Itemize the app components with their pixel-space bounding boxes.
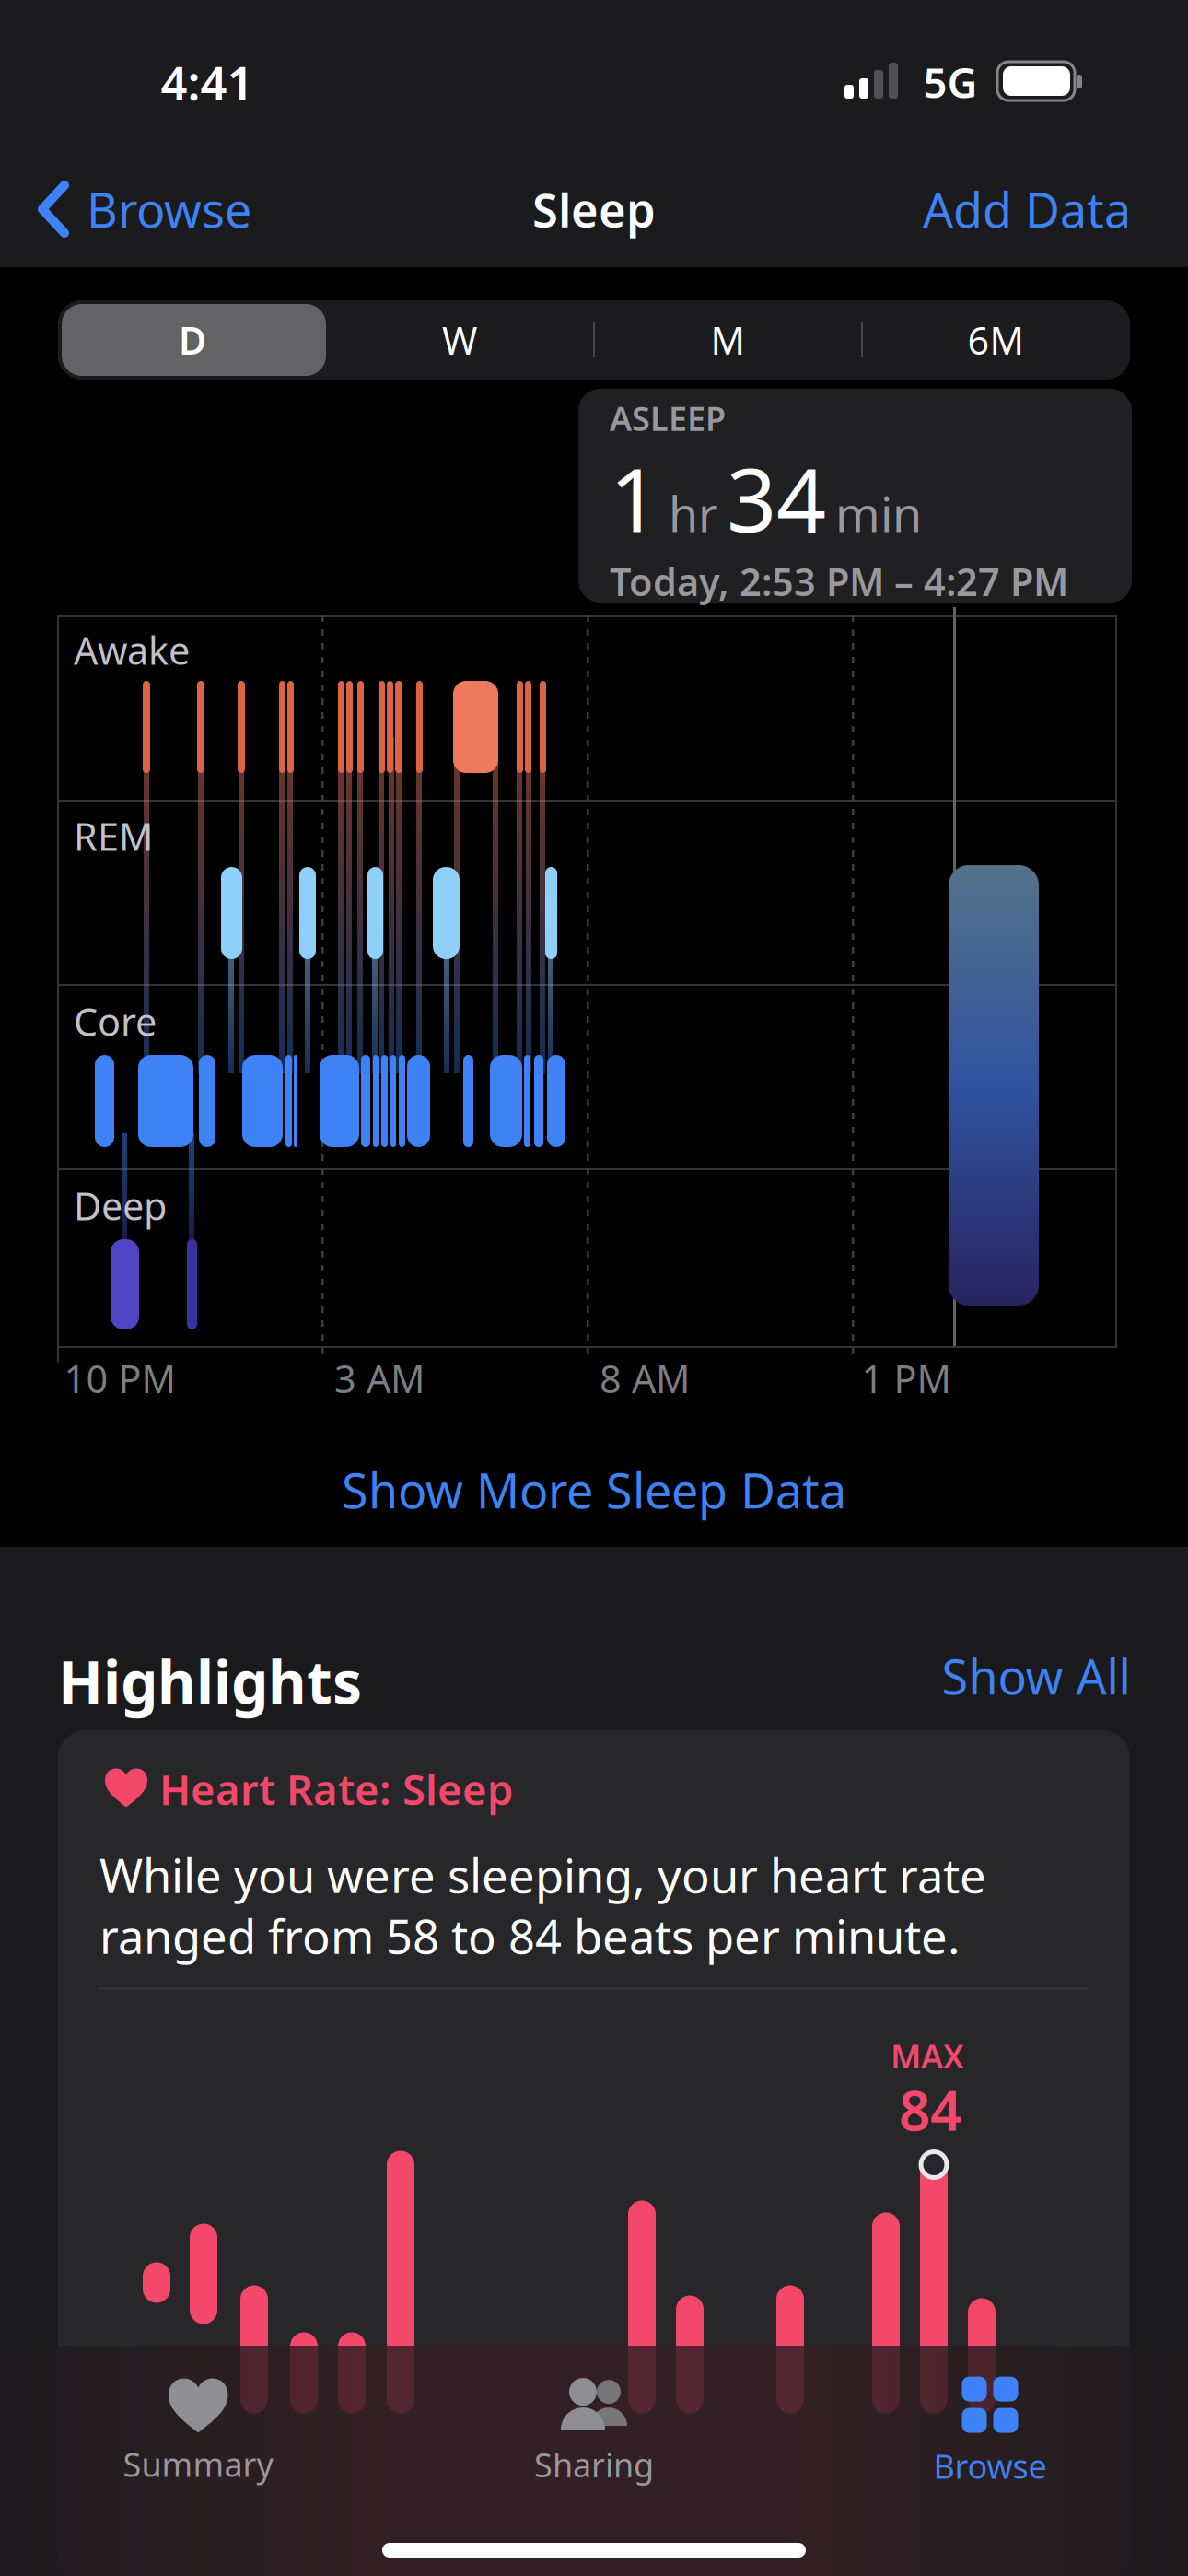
button[interactable]: Browse: [37, 177, 251, 241]
staticText: Summary: [123, 2442, 273, 2486]
staticText: While you were sleeping, your heart rate: [99, 1844, 986, 1906]
staticText: 10 PM: [64, 1353, 175, 1404]
staticText: 6M: [967, 315, 1024, 365]
button[interactable]: Sharing: [396, 2363, 792, 2501]
button[interactable]: Summary: [0, 2363, 396, 2501]
staticText: Core: [74, 996, 157, 1047]
button[interactable]: Add Data: [923, 177, 1131, 241]
staticText: MAX: [891, 2034, 964, 2078]
staticText: Browse: [87, 177, 251, 241]
staticText: Show More Sleep Data: [342, 1458, 846, 1522]
staticText: 5G: [923, 54, 978, 110]
button[interactable]: W: [326, 300, 593, 380]
staticText: 84: [899, 2073, 961, 2146]
button[interactable]: Show All: [942, 1644, 1130, 1708]
staticText: min: [835, 482, 922, 545]
staticText: M: [710, 315, 745, 365]
staticText: Highlights: [58, 1642, 362, 1720]
staticText: Sleep: [532, 178, 656, 240]
button[interactable]: Browse: [792, 2363, 1188, 2501]
staticText: Browse: [933, 2444, 1047, 2488]
staticText: D: [179, 315, 206, 365]
staticText: hr: [669, 482, 717, 545]
staticText: REM: [74, 811, 153, 861]
staticText: ranged from 58 to 84 beats per minute.: [99, 1905, 961, 1967]
staticText: 34: [727, 440, 826, 556]
staticText: 8 AM: [600, 1353, 690, 1404]
staticText: Awake: [74, 625, 190, 675]
staticText: 3 AM: [334, 1353, 425, 1404]
button[interactable]: 6M: [862, 300, 1129, 380]
staticText: Sharing: [534, 2443, 654, 2487]
staticText: Today, 2:53 PM – 4:27 PM: [610, 556, 1068, 607]
staticText: Heart Rate: Sleep: [159, 1761, 513, 1817]
staticText: ASLEEP: [610, 396, 726, 440]
button[interactable]: Heart Rate: Sleep: [58, 1731, 1130, 2576]
button[interactable]: D: [59, 300, 326, 380]
staticText: 4:41: [161, 51, 254, 113]
staticText: Add Data: [923, 177, 1131, 241]
staticText: W: [442, 315, 477, 365]
button[interactable]: M: [594, 300, 861, 380]
button[interactable]: Show More Sleep Data: [342, 1458, 846, 1522]
staticText: 1: [610, 440, 659, 556]
staticText: Show All: [942, 1644, 1130, 1708]
staticText: Deep: [74, 1180, 167, 1231]
staticText: 1 PM: [862, 1353, 951, 1404]
